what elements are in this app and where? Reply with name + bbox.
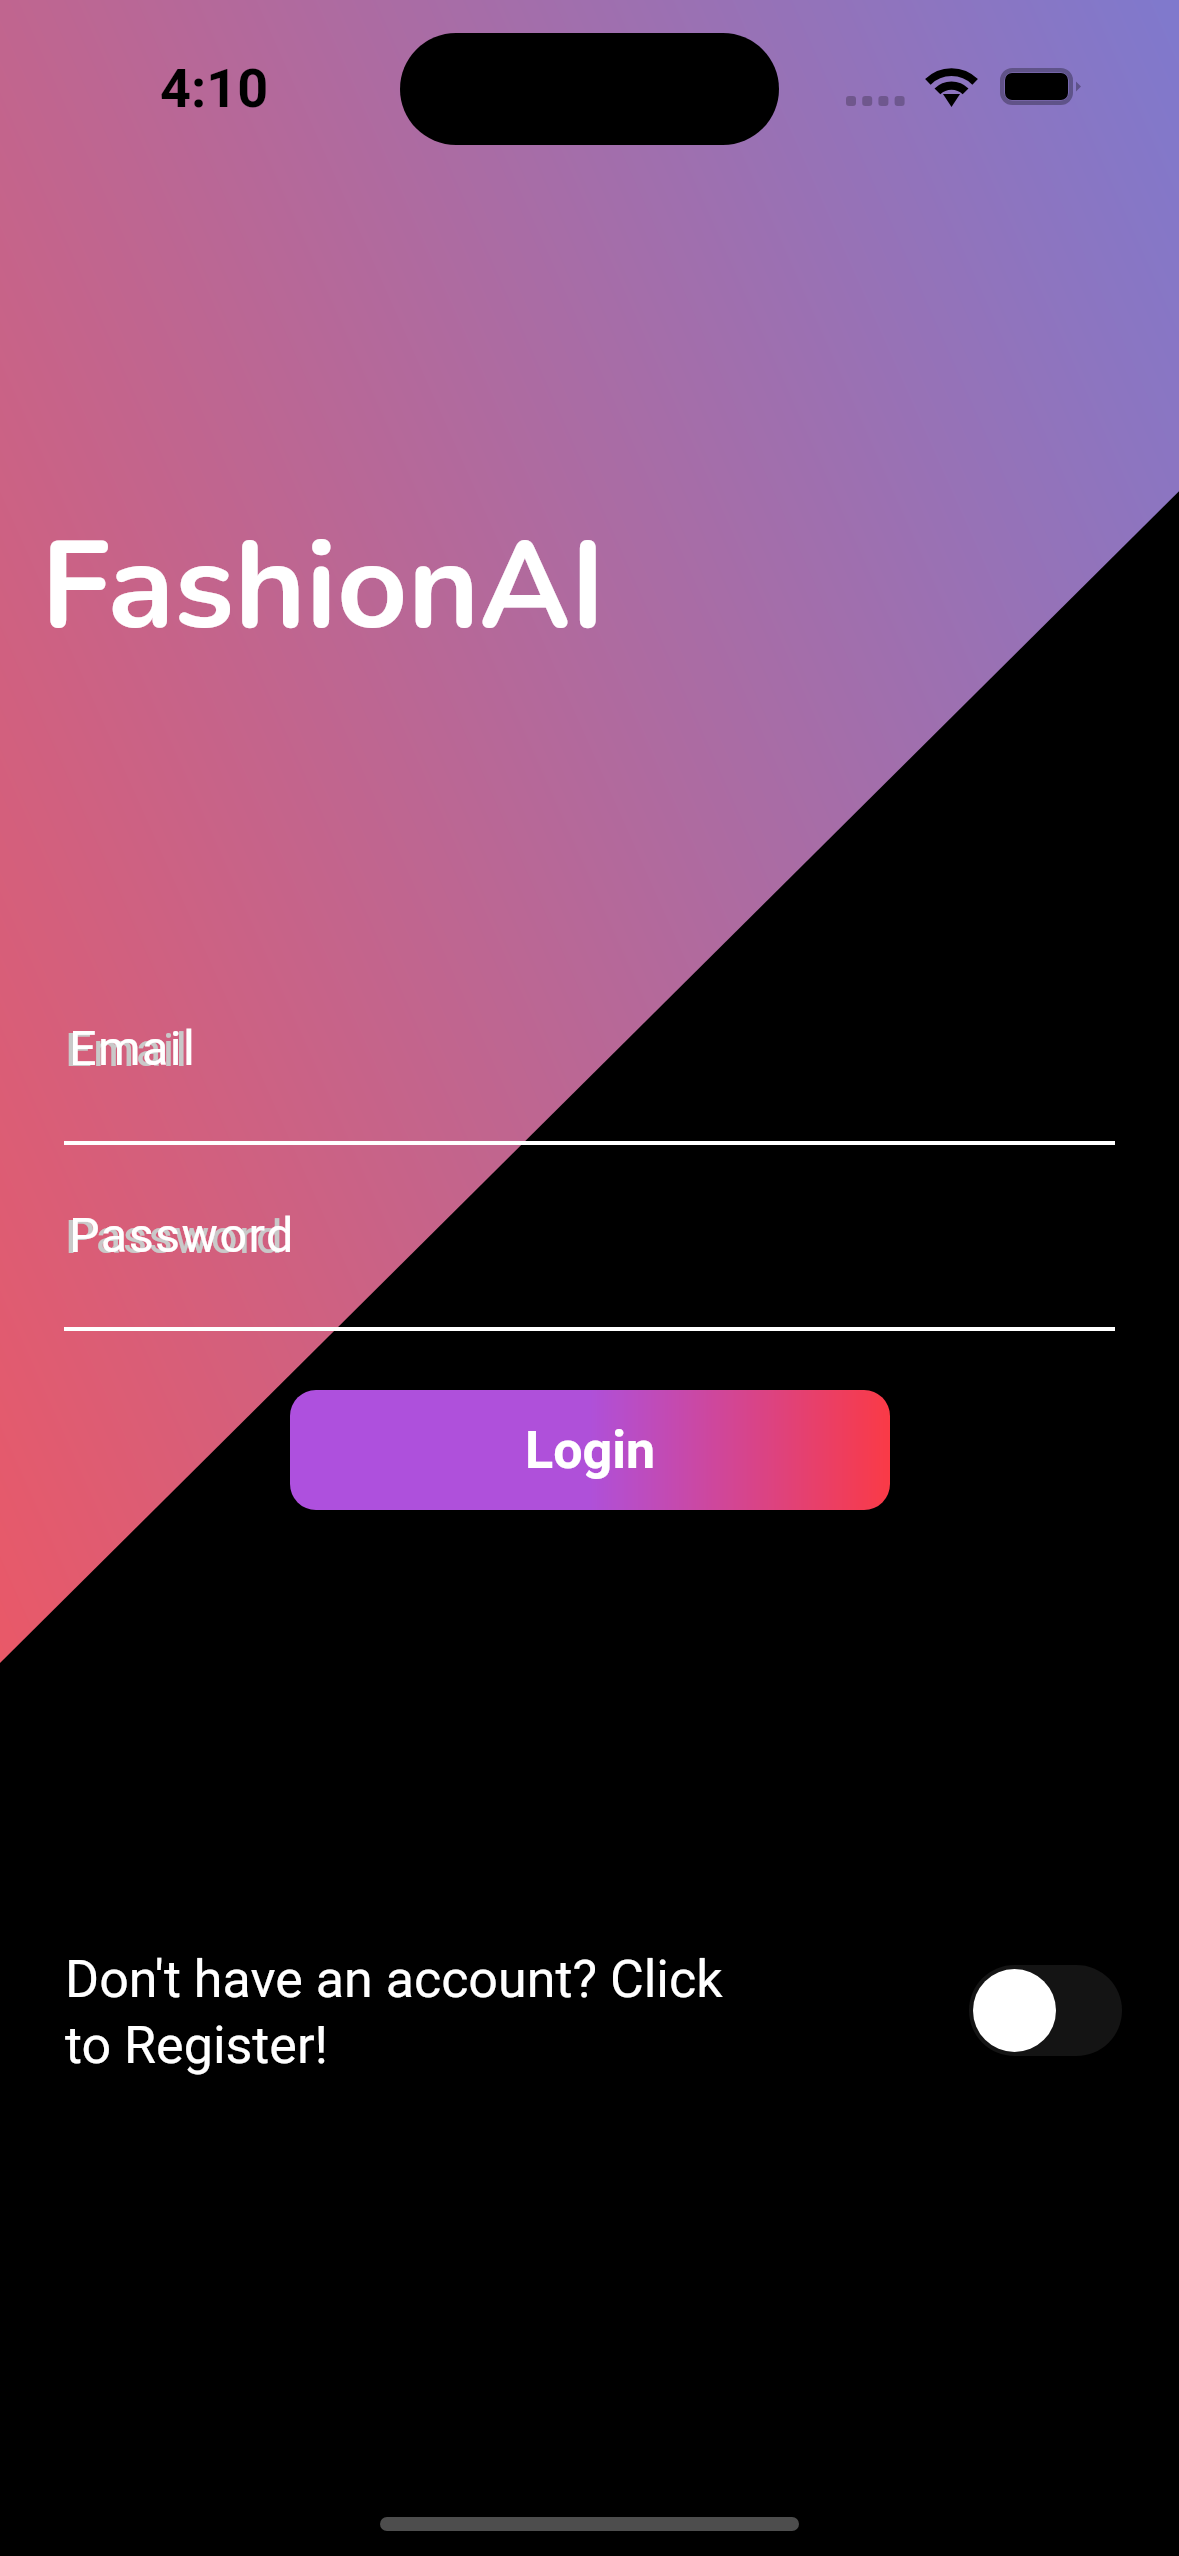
button[interactable]: Toggle register mode: [969, 1965, 1122, 2056]
staticText: Email: [69, 1022, 197, 1076]
staticText: FashionAI: [41, 520, 605, 665]
button[interactable]: Login: [290, 1390, 890, 1510]
staticText: 4:10: [160, 56, 269, 120]
staticText: Password: [65, 1210, 284, 1264]
staticText: Login: [525, 1420, 656, 1481]
staticText: Email: [65, 1023, 189, 1077]
staticText: Password: [69, 1209, 295, 1263]
button[interactable]: Don't have an account? Click to Register…: [65, 1945, 737, 2077]
